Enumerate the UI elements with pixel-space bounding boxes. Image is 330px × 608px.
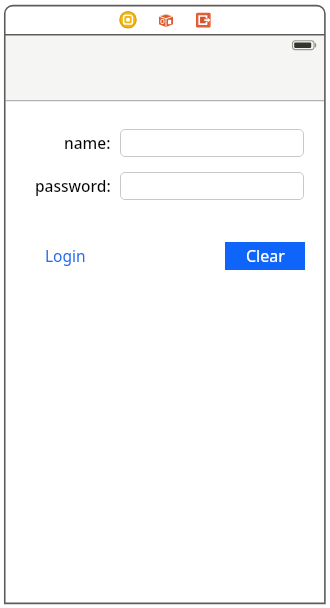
- button[interactable]: [120, 129, 304, 157]
- staticText: password:: [35, 175, 111, 196]
- staticText: name:: [64, 132, 111, 153]
- button[interactable]: [120, 172, 304, 200]
- button[interactable]: Clear: [225, 242, 305, 270]
- button[interactable]: Login: [45, 245, 86, 266]
- staticText: Login: [45, 245, 86, 266]
- staticText: Clear: [246, 245, 285, 267]
